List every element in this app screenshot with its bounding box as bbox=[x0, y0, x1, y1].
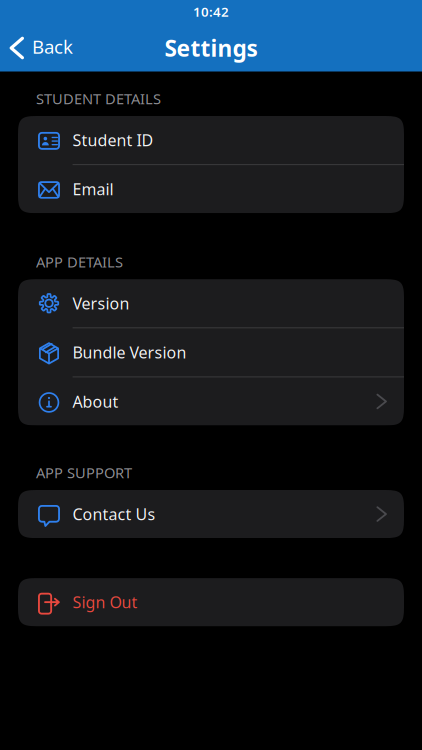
button[interactable]: Sign Out bbox=[18, 578, 404, 626]
button[interactable]: Back bbox=[0, 26, 83, 70]
button[interactable]: About bbox=[18, 377, 404, 425]
button[interactable]: Contact Us bbox=[18, 490, 404, 538]
staticText: Contact Us bbox=[73, 503, 156, 525]
staticText: Email bbox=[73, 178, 114, 200]
staticText: 10:42 bbox=[193, 3, 229, 20]
staticText: Student ID bbox=[73, 129, 154, 151]
staticText: STUDENT DETAILS bbox=[36, 89, 161, 108]
staticText: Settings bbox=[164, 33, 257, 63]
staticText: Bundle Version bbox=[73, 342, 187, 363]
button[interactable]: Bundle Version bbox=[18, 328, 404, 376]
button[interactable]: Email bbox=[18, 165, 404, 213]
staticText: About bbox=[73, 391, 119, 412]
staticText: Version bbox=[73, 293, 130, 314]
staticText: Back bbox=[32, 34, 73, 59]
button[interactable]: Student ID bbox=[18, 116, 404, 164]
button[interactable]: Version bbox=[18, 279, 404, 327]
staticText: Sign Out bbox=[73, 591, 138, 613]
staticText: APP DETAILS bbox=[36, 252, 123, 271]
staticText: APP SUPPORT bbox=[36, 463, 132, 482]
